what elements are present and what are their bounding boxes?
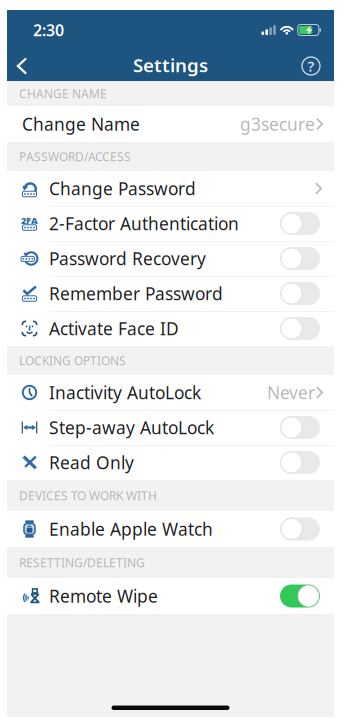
button[interactable]: 2FA (7, 206, 334, 241)
button[interactable]: Password Recovery (7, 241, 334, 276)
staticText: PASSWORD/ACCESS (19, 148, 131, 164)
staticText: Step-away AutoLock (49, 416, 214, 439)
staticText: Read Only (49, 451, 134, 474)
staticText: g3secure (240, 112, 315, 135)
button[interactable]: Change Password (7, 171, 334, 206)
staticText: 2:30 (33, 19, 64, 41)
button[interactable]: Read Only (7, 445, 334, 480)
staticText: Settings (133, 53, 208, 77)
button[interactable]: Help (302, 54, 334, 76)
button[interactable]: Change Name (7, 106, 334, 142)
button[interactable]: Remote Wipe (7, 578, 334, 614)
staticText: CHANGE NAME (19, 85, 107, 101)
staticText: Never (267, 381, 315, 404)
staticText: Change Name (22, 112, 140, 135)
button[interactable]: Back (7, 55, 27, 74)
staticText: LOCKING OPTIONS (19, 352, 126, 368)
button[interactable]: Step-away AutoLock (7, 410, 334, 445)
button[interactable]: Remember Password (7, 276, 334, 311)
staticText: RESETTING/DELETING (19, 554, 145, 570)
staticText: 2-Factor Authentication (49, 212, 239, 235)
staticText: Inactivity AutoLock (49, 381, 201, 404)
staticText: Password Recovery (49, 247, 206, 270)
staticText: Change Password (49, 177, 196, 200)
button[interactable]: Inactivity AutoLock (7, 375, 334, 410)
staticText: DEVICES TO WORK WITH (19, 487, 157, 503)
staticText: 2FA (21, 214, 38, 227)
staticText: ? (307, 56, 314, 76)
button[interactable]: Enable Apple Watch (7, 511, 334, 547)
staticText: Remember Password (49, 282, 223, 305)
staticText: Enable Apple Watch (49, 517, 213, 540)
staticText: Activate Face ID (49, 317, 179, 340)
button[interactable]: Activate Face ID (7, 311, 334, 346)
staticText: Remote Wipe (49, 584, 158, 607)
